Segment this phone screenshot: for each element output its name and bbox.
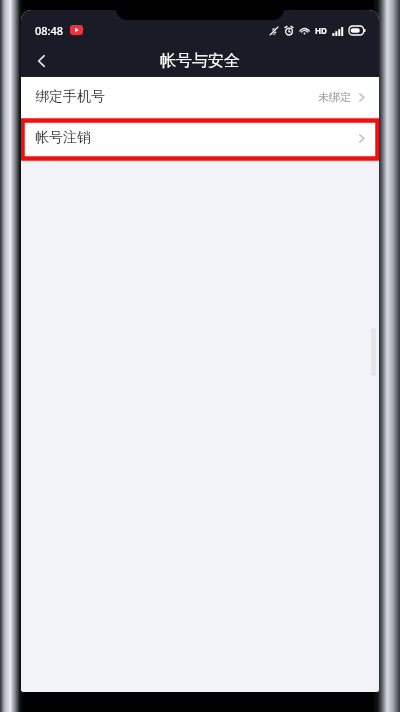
button[interactable]: 帐号注销 <box>21 118 379 158</box>
staticText: 帐号注销 <box>35 129 91 147</box>
staticText: 绑定手机号 <box>35 88 105 106</box>
staticText: HD <box>315 25 327 36</box>
staticText: 未绑定 <box>318 90 351 104</box>
button[interactable]: Back <box>21 44 63 77</box>
staticText: 08:48 <box>35 23 64 38</box>
button[interactable]: 绑定手机号 <box>21 77 379 117</box>
staticText: 帐号与安全 <box>160 51 240 71</box>
